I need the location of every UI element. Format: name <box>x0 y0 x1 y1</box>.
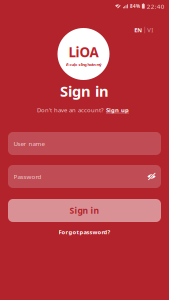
button[interactable]: Forgot password? <box>53 225 115 239</box>
staticText: EN <box>134 26 142 34</box>
staticText: LiOA <box>68 43 98 61</box>
button[interactable]: Show password <box>147 172 156 181</box>
staticText: Password <box>13 172 41 181</box>
staticText: Sign in <box>60 81 109 101</box>
staticText: Forgot password? <box>58 228 110 236</box>
staticText: Vì cuộc sống hoàn mỹ <box>65 62 101 67</box>
staticText: 84% <box>130 3 140 9</box>
button[interactable]: Sign up <box>106 106 129 114</box>
staticText: VI <box>147 26 153 34</box>
button[interactable]: VI <box>145 24 155 35</box>
staticText: Sign up <box>106 106 129 114</box>
staticText: User name <box>13 139 44 148</box>
staticText: 22:40 <box>147 2 165 10</box>
button[interactable]: EN <box>132 24 144 35</box>
staticText: Sign in <box>69 205 99 216</box>
staticText: Don't have an account? <box>37 106 104 114</box>
button[interactable]: Sign in <box>8 199 161 222</box>
